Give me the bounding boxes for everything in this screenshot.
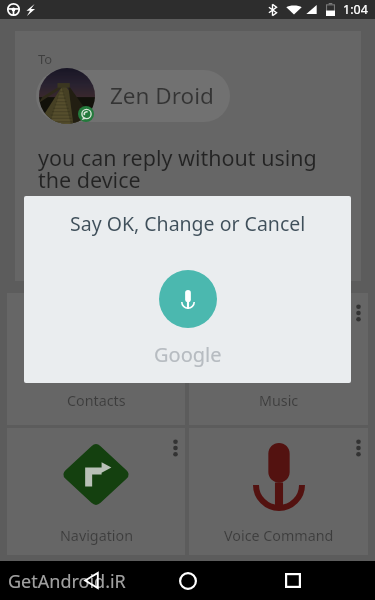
button[interactable]: More options: [167, 302, 184, 324]
button[interactable]: Voice Command: [189, 428, 368, 555]
button[interactable]: Music: [189, 293, 368, 425]
button[interactable]: More options: [350, 437, 367, 459]
staticText: Contacts: [67, 391, 126, 410]
staticText: Zen Droid: [110, 80, 214, 111]
staticText: Navigation: [60, 526, 133, 545]
button[interactable]: More options: [350, 302, 367, 324]
staticText: Say OK, Change or Cancel: [70, 210, 306, 237]
staticText: 1:04: [343, 1, 368, 18]
staticText: Voice Command: [224, 526, 334, 545]
button[interactable]: Contacts: [7, 293, 185, 425]
button[interactable]: [36, 70, 230, 122]
staticText: Music: [259, 391, 299, 410]
button[interactable]: More options: [167, 437, 184, 459]
button[interactable]: Home: [172, 561, 204, 600]
button[interactable]: Microphone: [159, 270, 217, 328]
button[interactable]: Navigation: [7, 428, 185, 555]
staticText: To: [38, 50, 53, 68]
button[interactable]: Back: [75, 561, 107, 600]
staticText: you can reply without using the device: [38, 143, 317, 195]
staticText: GetAndroid.iR: [8, 569, 126, 594]
button[interactable]: Recent apps: [277, 561, 309, 600]
staticText: Google: [154, 341, 222, 368]
